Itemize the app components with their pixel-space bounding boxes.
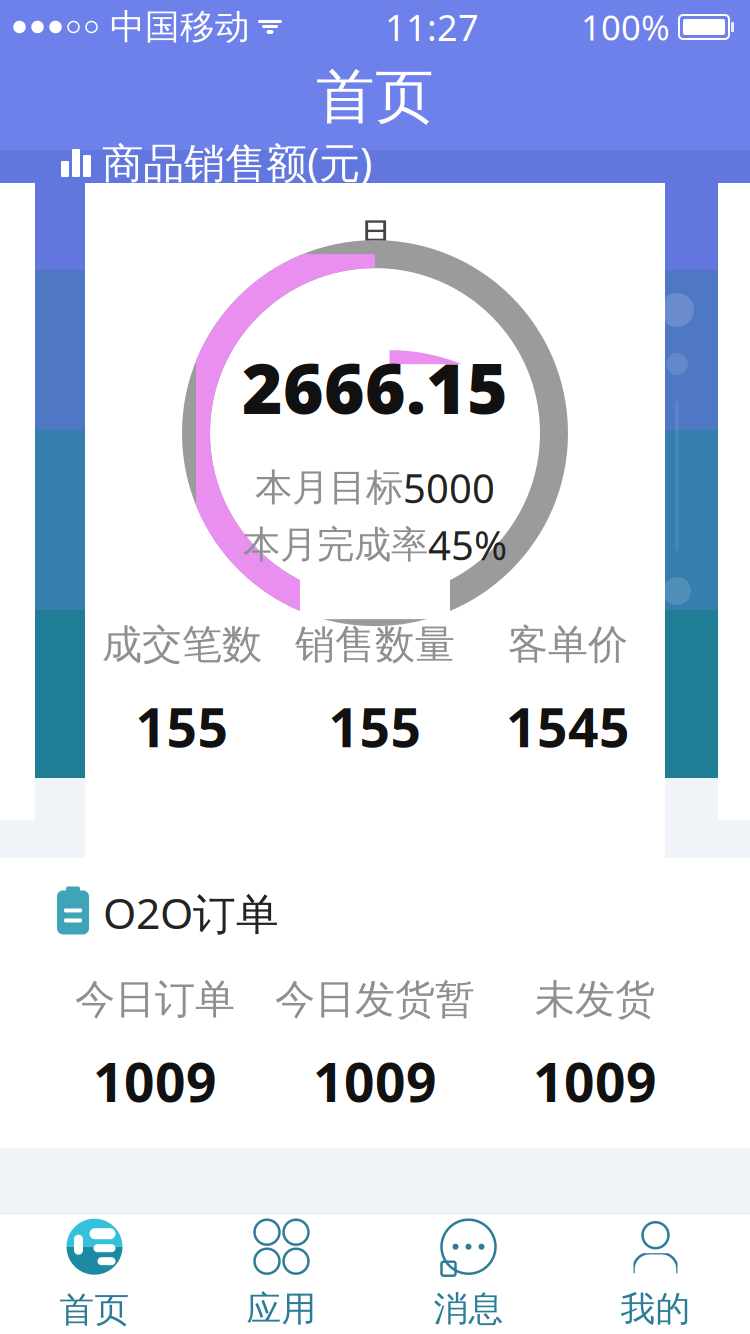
staticText: 消息 [433,1288,503,1330]
staticText: 45% [428,518,507,571]
staticText: 商品销售额(元) [102,135,372,189]
button[interactable]: 消息 [375,1218,562,1330]
staticText: 1545 [506,691,630,762]
button[interactable]: 我的 [562,1218,749,1330]
staticText: 1009 [93,1046,217,1117]
staticText: 成交笔数 [102,620,262,669]
staticText: 首页 [316,61,434,133]
staticText: 中国移动 [110,6,250,48]
staticText: 首页 [59,1289,129,1331]
staticText: 本月目标 [255,465,403,511]
button[interactable]: 首页 [1,1218,188,1330]
staticText: 11:27 [385,3,479,51]
staticText: 月 [355,213,395,262]
staticText: 100% [581,4,670,50]
staticText: 今日发货暂 [275,975,475,1024]
button[interactable]: 应用 [188,1218,375,1330]
staticText: O2O订单 [103,884,279,941]
staticText: 客单价 [508,620,628,669]
staticText: 未发货 [535,975,655,1024]
staticText: 155 [328,691,421,762]
staticText: 今日订单 [75,975,235,1024]
staticText: 应用 [246,1288,316,1330]
staticText: 155 [135,691,228,762]
staticText: 本月完成率 [243,522,428,568]
staticText: 销售数量 [295,620,455,669]
staticText: 1009 [533,1046,657,1117]
staticText: 我的 [620,1288,690,1330]
staticText: 5000 [403,461,495,514]
staticText: 1009 [313,1046,437,1117]
staticText: 2666.15 [242,341,508,433]
